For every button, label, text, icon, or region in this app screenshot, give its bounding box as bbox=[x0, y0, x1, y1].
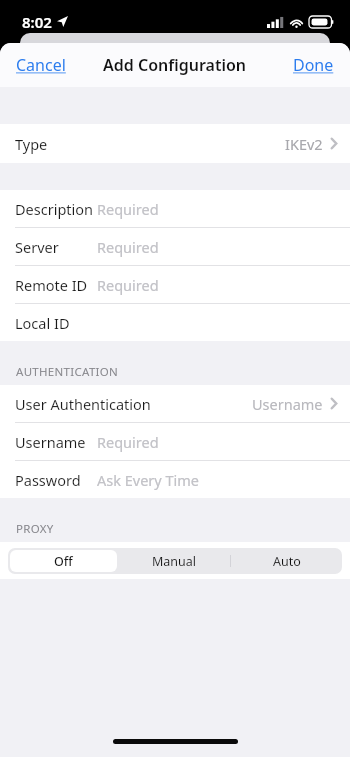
staticText: Add Configuration bbox=[103, 54, 247, 76]
button[interactable]: Auto bbox=[231, 548, 342, 574]
staticText: Ask Every Time bbox=[97, 470, 200, 490]
button[interactable]: Server bbox=[0, 228, 350, 265]
staticText: Server bbox=[15, 237, 59, 257]
staticText: Description bbox=[15, 199, 94, 219]
button[interactable]: Done bbox=[277, 44, 350, 86]
button[interactable]: User Authentication bbox=[0, 385, 350, 422]
staticText: Off bbox=[54, 553, 73, 570]
staticText: AUTHENTICATION bbox=[16, 364, 119, 380]
staticText: Cancel bbox=[16, 54, 66, 76]
button[interactable]: Description bbox=[0, 190, 350, 227]
button[interactable]: Off bbox=[10, 550, 117, 572]
staticText: Type bbox=[15, 134, 48, 154]
staticText: Username bbox=[15, 432, 86, 452]
staticText: Manual bbox=[152, 553, 197, 570]
button[interactable]: Cancel bbox=[0, 44, 82, 86]
button[interactable]: Remote ID bbox=[0, 266, 350, 303]
other: Home indicator bbox=[113, 739, 238, 744]
button[interactable]: Local ID bbox=[0, 304, 350, 341]
button[interactable]: Manual bbox=[119, 548, 230, 574]
staticText: Required bbox=[97, 432, 159, 452]
staticText: Username bbox=[252, 394, 323, 414]
staticText: User Authentication bbox=[15, 394, 151, 414]
staticText: Required bbox=[97, 275, 159, 295]
staticText: IKEv2 bbox=[285, 134, 323, 154]
staticText: PROXY bbox=[16, 521, 54, 537]
button[interactable]: Type bbox=[0, 124, 350, 163]
button[interactable]: Password bbox=[0, 461, 350, 498]
staticText: Auto bbox=[273, 553, 301, 570]
staticText: 8:02 bbox=[22, 12, 52, 32]
staticText: Required bbox=[97, 237, 159, 257]
button[interactable]: Username bbox=[0, 423, 350, 460]
staticText: Local ID bbox=[15, 313, 70, 333]
staticText: Required bbox=[97, 199, 159, 219]
staticText: Done bbox=[293, 54, 334, 76]
staticText: Remote ID bbox=[15, 275, 88, 295]
staticText: Password bbox=[15, 470, 81, 490]
